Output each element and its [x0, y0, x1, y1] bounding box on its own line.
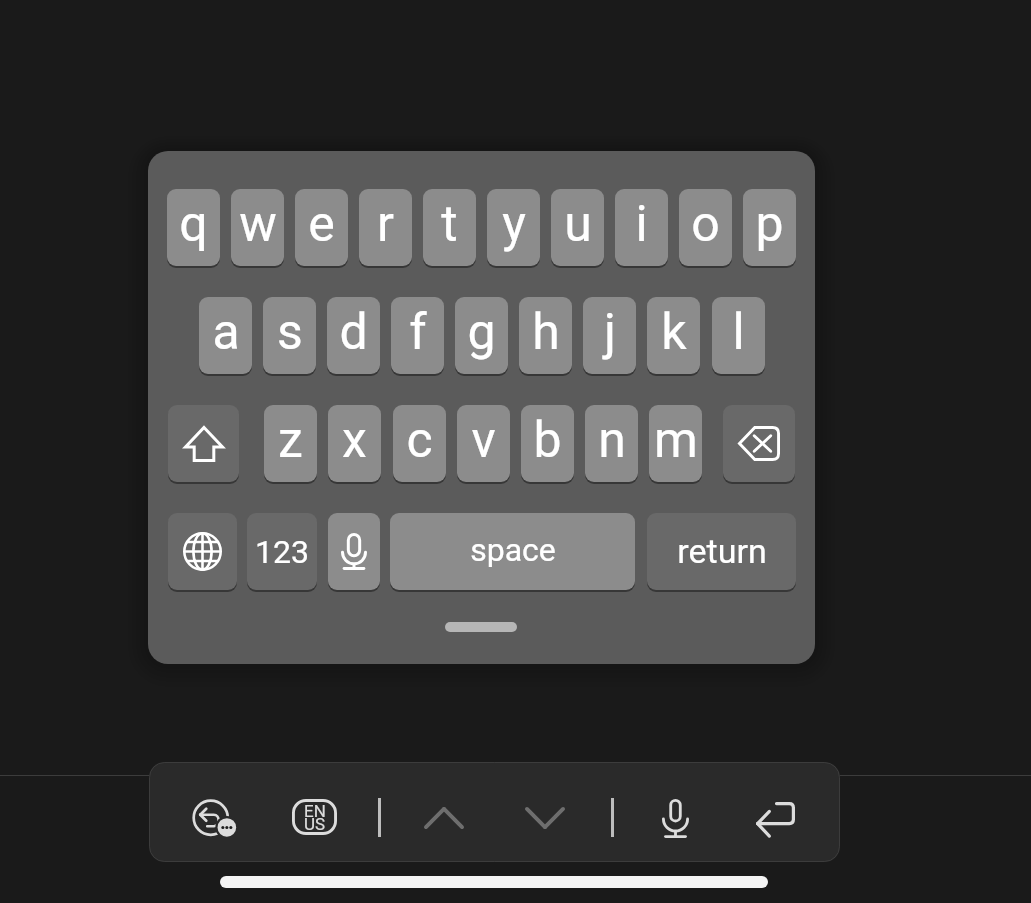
- button[interactable]: s: [263, 297, 316, 374]
- button[interactable]: 123: [247, 513, 317, 590]
- staticText: e: [308, 195, 335, 254]
- button[interactable]: y: [487, 189, 540, 266]
- button[interactable]: Voice input: [328, 513, 380, 590]
- staticText: y: [502, 195, 526, 254]
- button[interactable]: f: [391, 297, 444, 374]
- staticText: j: [604, 303, 616, 362]
- staticText: z: [278, 411, 303, 470]
- button[interactable]: Shift: [168, 405, 239, 482]
- staticText: g: [467, 303, 496, 362]
- staticText: f: [409, 303, 427, 362]
- button[interactable]: t: [423, 189, 476, 266]
- button[interactable]: m: [649, 405, 702, 482]
- staticText: i: [635, 195, 648, 254]
- button[interactable]: h: [519, 297, 572, 374]
- button[interactable]: c: [393, 405, 446, 482]
- button[interactable]: Backspace: [723, 405, 795, 482]
- staticText: u: [564, 195, 592, 254]
- button[interactable]: k: [647, 297, 700, 374]
- staticText: c: [406, 411, 433, 470]
- button[interactable]: o: [679, 189, 732, 266]
- button[interactable]: i: [615, 189, 668, 266]
- button[interactable]: return: [647, 513, 796, 590]
- staticText: EN: [304, 801, 326, 821]
- button[interactable]: v: [457, 405, 510, 482]
- button[interactable]: Language EN US: [286, 789, 342, 845]
- staticText: p: [755, 195, 784, 254]
- staticText: h: [532, 303, 560, 362]
- button[interactable]: d: [327, 297, 380, 374]
- button[interactable]: e: [295, 189, 348, 266]
- staticText: k: [661, 303, 687, 362]
- staticText: l: [732, 303, 745, 362]
- staticText: return: [677, 531, 767, 571]
- button[interactable]: a: [199, 297, 252, 374]
- button[interactable]: x: [328, 405, 381, 482]
- button[interactable]: r: [359, 189, 412, 266]
- button[interactable]: b: [521, 405, 574, 482]
- button[interactable]: z: [264, 405, 317, 482]
- button[interactable]: Next: [517, 790, 573, 846]
- button[interactable]: g: [455, 297, 508, 374]
- staticText: q: [179, 195, 208, 254]
- button[interactable]: Switch language: [168, 513, 237, 590]
- staticText: x: [342, 411, 367, 470]
- staticText: o: [691, 195, 720, 254]
- button[interactable]: Voice input: [647, 790, 703, 846]
- button[interactable]: w: [231, 189, 284, 266]
- staticText: s: [277, 303, 303, 362]
- button[interactable]: j: [583, 297, 636, 374]
- staticText: US: [304, 814, 326, 834]
- staticText: r: [377, 195, 394, 254]
- button[interactable]: More options: [182, 789, 238, 845]
- button[interactable]: q: [167, 189, 220, 266]
- button[interactable]: u: [551, 189, 604, 266]
- staticText: d: [339, 303, 368, 362]
- staticText: w: [239, 195, 277, 254]
- staticText: n: [598, 411, 626, 470]
- button[interactable]: space: [390, 513, 635, 590]
- button[interactable]: Enter: [747, 791, 803, 847]
- staticText: b: [533, 411, 562, 470]
- staticText: a: [212, 303, 240, 362]
- staticText: space: [470, 531, 556, 569]
- button[interactable]: l: [712, 297, 765, 374]
- button[interactable]: p: [743, 189, 796, 266]
- button[interactable]: Previous: [416, 790, 472, 846]
- staticText: m: [654, 411, 698, 470]
- button[interactable]: n: [585, 405, 638, 482]
- staticText: 123: [255, 533, 309, 571]
- staticText: v: [471, 411, 496, 470]
- staticText: t: [441, 195, 458, 254]
